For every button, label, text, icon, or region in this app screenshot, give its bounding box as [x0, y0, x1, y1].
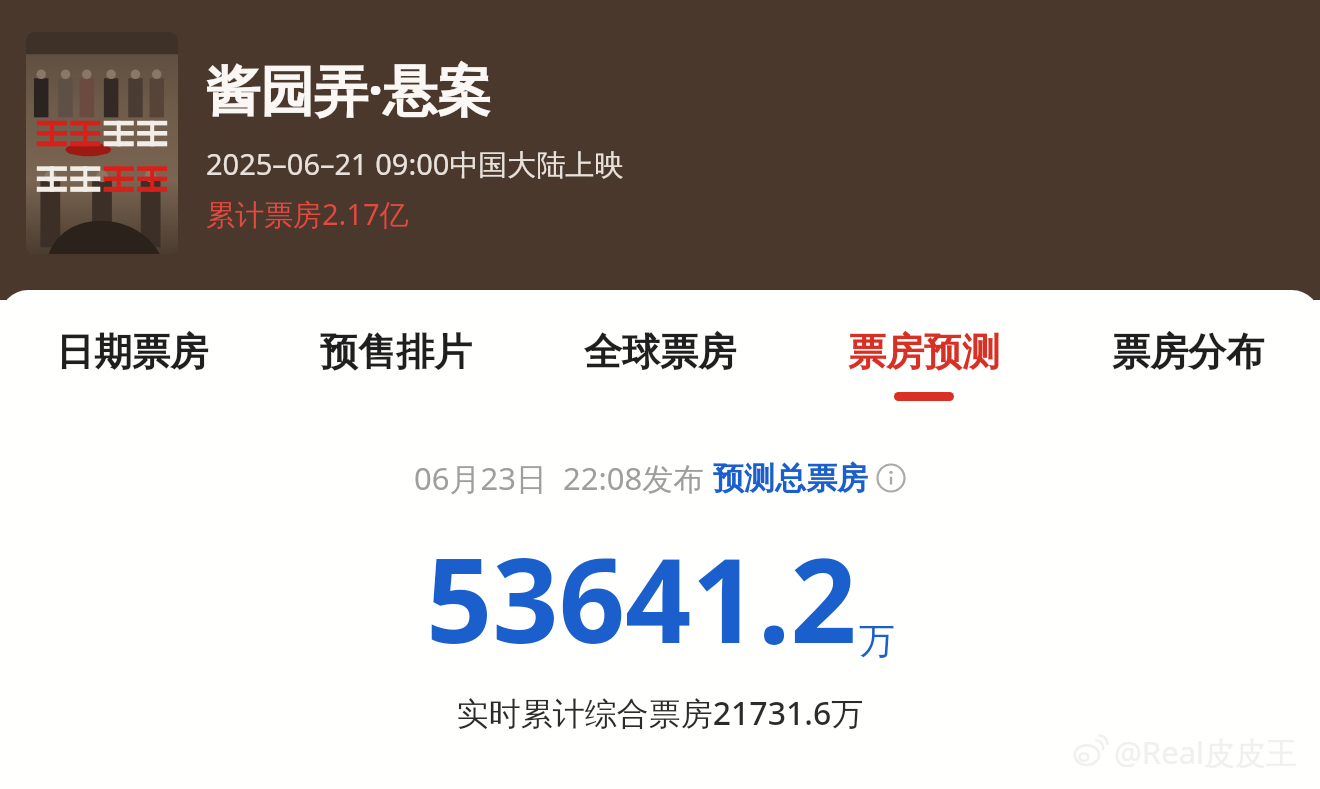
button[interactable]: 酱园弄·悬案 — [206, 52, 624, 234]
button[interactable]: 日期票房 — [46, 324, 218, 405]
staticText: 票房分布 — [1112, 328, 1264, 376]
staticText: 万 — [859, 618, 895, 663]
button[interactable]: 票房分布 — [1102, 324, 1274, 405]
staticText: 2025–06–21 09:00中国大陆上映 — [206, 144, 624, 184]
staticText: 实时累计综合票房21731.6万 — [0, 691, 1320, 735]
staticText: 票房预测 — [848, 328, 1000, 376]
button[interactable]: 票房预测 — [838, 324, 1010, 405]
button[interactable]: 06月23日 22:08发布 — [0, 457, 1320, 499]
staticText: 06月23日 22:08发布 — [414, 457, 713, 499]
button[interactable]: 全球票房 — [574, 324, 746, 405]
button[interactable] — [26, 32, 178, 254]
staticText: 预售排片 — [320, 328, 472, 376]
staticText: 全球票房 — [584, 328, 736, 376]
staticText: 日期票房 — [56, 328, 208, 376]
staticText: 酱园弄·悬案 — [206, 52, 492, 126]
button[interactable]: 预售排片 — [310, 324, 482, 405]
staticText: 预测总票房 — [713, 459, 868, 498]
staticText: 累计票房2.17亿 — [206, 194, 409, 234]
button[interactable]: 说明 — [876, 463, 906, 493]
staticText: @Real皮皮王 — [1114, 731, 1298, 773]
staticText: 53641.2 — [426, 519, 857, 677]
